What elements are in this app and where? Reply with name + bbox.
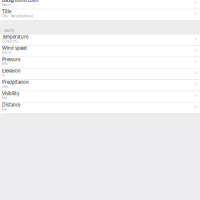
staticText: Precipitation [2,79,29,85]
staticText: Elevation [2,68,21,73]
button[interactable]: Temperature [0,35,200,46]
staticText: km/h [2,50,11,54]
staticText: Green [2,3,11,7]
button[interactable]: Pressure [0,57,200,68]
button[interactable]: Background color [0,0,200,9]
staticText: City · Neighborhood [2,14,33,18]
button[interactable]: Distance [0,102,200,114]
staticText: Distance [2,102,20,107]
button[interactable]: Elevation [0,68,200,80]
staticText: m [2,73,5,77]
staticText: Visibility [2,91,19,96]
staticText: km [2,107,7,111]
staticText: Wind speed [2,45,27,51]
staticText: km [2,96,7,100]
staticText: Temperature [2,34,28,39]
button[interactable]: Visibility [0,91,200,102]
button[interactable]: Title [0,9,200,21]
staticText: Title [2,9,11,14]
staticText: UNITS [4,29,14,33]
staticText: hPa [2,62,8,66]
button[interactable]: Wind speed [0,46,200,57]
button[interactable]: Precipitation [0,80,200,91]
staticText: mm [2,84,8,88]
staticText: Background color [2,0,39,3]
staticText: Celsius (°C) [2,39,18,43]
staticText: Pressure [2,57,20,62]
